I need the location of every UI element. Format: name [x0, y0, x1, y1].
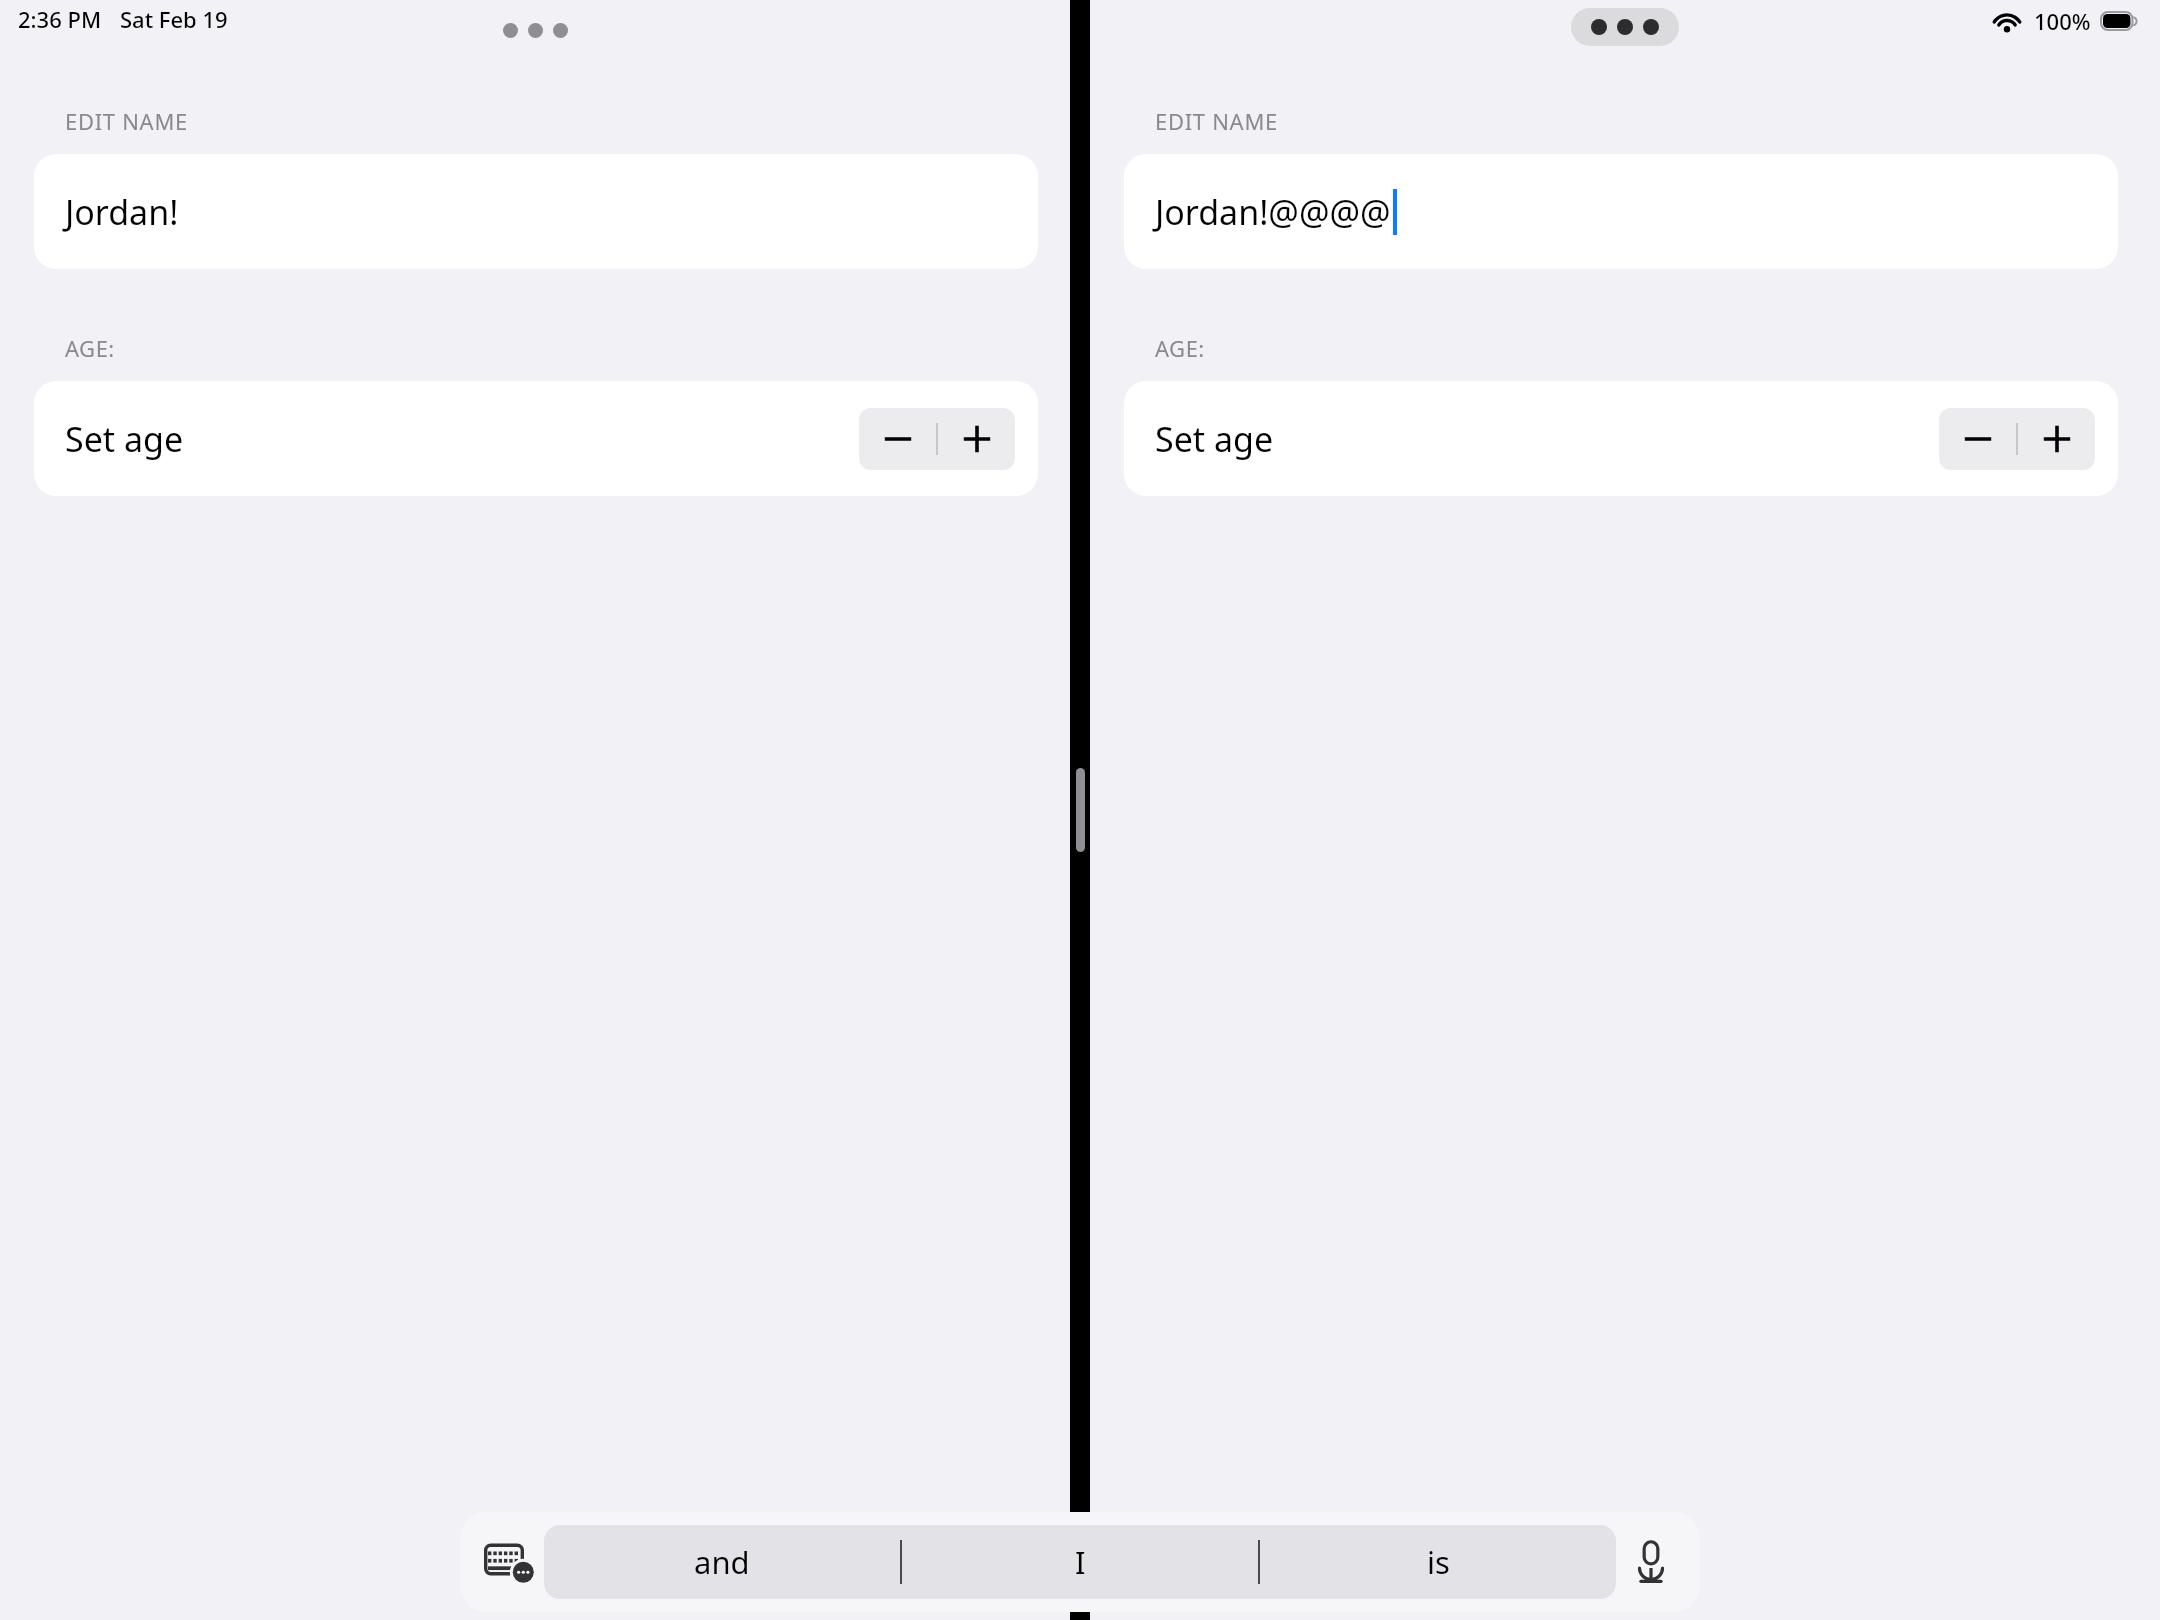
button[interactable]: Jordan!@@@@ — [1124, 154, 2118, 269]
staticText: 100% — [2034, 6, 2091, 36]
staticText: I — [1075, 1541, 1086, 1583]
button[interactable]: Dictate — [1616, 1527, 1686, 1597]
staticText: and — [694, 1541, 750, 1583]
button[interactable]: Multitasking options — [483, 12, 588, 49]
button[interactable]: Jordan! — [34, 154, 1038, 269]
staticText: EDIT NAME — [65, 106, 188, 136]
staticText: Set age — [65, 416, 184, 462]
staticText: 2:36 PM — [18, 4, 102, 34]
staticText: Jordan! — [65, 189, 179, 235]
button[interactable]: Multitasking options — [1571, 8, 1679, 46]
staticText: AGE: — [65, 333, 115, 363]
button[interactable]: and — [544, 1525, 900, 1599]
button[interactable]: Keyboard settings — [474, 1527, 544, 1597]
staticText: EDIT NAME — [1155, 106, 1278, 136]
button[interactable]: Increase age — [2018, 408, 2095, 470]
button[interactable]: Increase age — [938, 408, 1015, 470]
staticText: Sat Feb 19 — [120, 4, 228, 34]
button[interactable]: Decrease age — [859, 408, 936, 470]
button[interactable]: Decrease age — [1939, 408, 2016, 470]
staticText: is — [1427, 1541, 1450, 1583]
staticText: Jordan!@@@@ — [1155, 189, 1391, 235]
button[interactable]: is — [1260, 1525, 1616, 1599]
staticText: AGE: — [1155, 333, 1205, 363]
staticText: Set age — [1155, 416, 1274, 462]
button[interactable]: I — [902, 1525, 1258, 1599]
